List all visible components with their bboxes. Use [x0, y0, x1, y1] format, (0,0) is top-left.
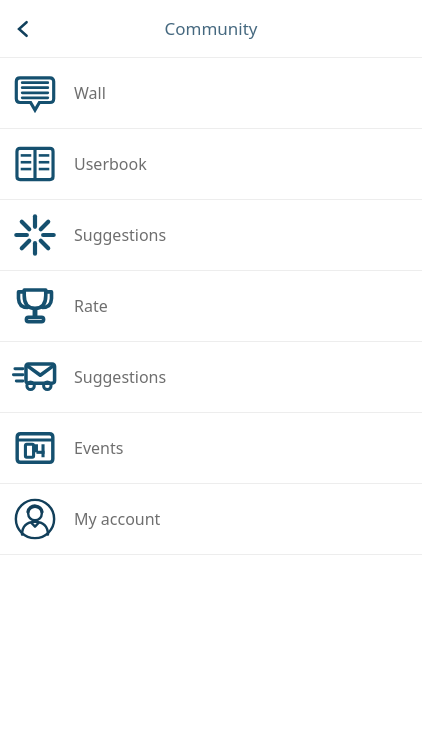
button[interactable]: Events	[0, 413, 422, 483]
button[interactable]: Rate	[0, 271, 422, 341]
button[interactable]: Wall	[0, 58, 422, 128]
staticText: Rate	[74, 295, 108, 317]
button[interactable]: My account	[0, 484, 422, 554]
staticText: Community	[0, 17, 422, 40]
staticText: Userbook	[74, 153, 147, 175]
staticText: My account	[74, 508, 161, 530]
button[interactable]: Suggestions	[0, 200, 422, 270]
button[interactable]: Back	[0, 6, 46, 52]
staticText: Wall	[74, 82, 106, 104]
button[interactable]: Userbook	[0, 129, 422, 199]
staticText: Suggestions	[74, 366, 167, 388]
staticText: Events	[74, 437, 124, 459]
button[interactable]: Suggestions	[0, 342, 422, 412]
staticText: Suggestions	[74, 224, 167, 246]
